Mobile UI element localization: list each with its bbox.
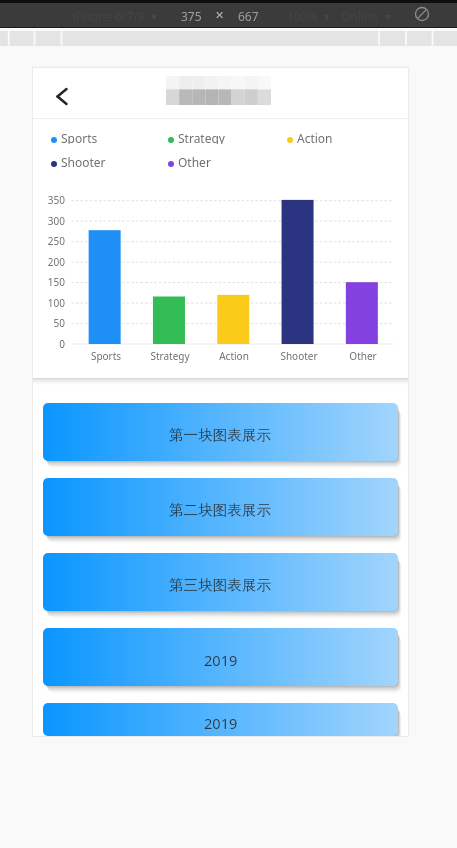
staticText: Action bbox=[202, 349, 266, 363]
staticText: 0 bbox=[33, 337, 65, 351]
button[interactable]: 第一块图表展示 bbox=[43, 403, 398, 461]
button[interactable]: Disable network throttling bbox=[410, 2, 434, 26]
staticText: Strategy bbox=[178, 130, 225, 144]
staticText: 200 bbox=[33, 255, 65, 269]
staticText: 350 bbox=[33, 193, 65, 207]
button[interactable]: 2019 bbox=[43, 703, 398, 736]
staticText: 第一块图表展示 bbox=[169, 426, 272, 444]
staticText: Sports bbox=[74, 349, 138, 363]
staticText: Shooter bbox=[267, 349, 331, 363]
button[interactable]: 第三块图表展示 bbox=[43, 553, 398, 611]
button[interactable]: Sports bbox=[51, 133, 98, 147]
staticText: Action bbox=[297, 130, 333, 144]
button[interactable]: Other bbox=[168, 157, 211, 171]
button[interactable]: Strategy bbox=[168, 133, 225, 147]
staticText: 375 bbox=[181, 8, 202, 24]
staticText: 2019 bbox=[204, 650, 238, 670]
staticText: Shooter bbox=[61, 154, 106, 168]
staticText: 50 bbox=[33, 316, 65, 330]
button[interactable]: 第二块图表展示 bbox=[43, 478, 398, 536]
staticText: 100 bbox=[33, 296, 65, 310]
staticText: 150 bbox=[33, 275, 65, 289]
staticText: ✕ bbox=[215, 9, 225, 22]
staticText: Strategy bbox=[138, 349, 202, 363]
button[interactable]: 2019 bbox=[43, 628, 398, 686]
staticText: 第二块图表展示 bbox=[169, 501, 272, 519]
staticText: 250 bbox=[33, 234, 65, 248]
button[interactable]: Back bbox=[40, 73, 84, 117]
staticText: 667 bbox=[238, 8, 259, 24]
staticText: 300 bbox=[33, 214, 65, 228]
staticText: Other bbox=[178, 154, 211, 168]
button[interactable]: Action bbox=[287, 133, 333, 147]
button[interactable]: Shooter bbox=[51, 157, 106, 171]
staticText: Sports bbox=[61, 130, 98, 144]
staticText: 第三块图表展示 bbox=[169, 576, 272, 594]
staticText: Other bbox=[331, 349, 395, 363]
staticText: 2019 bbox=[204, 713, 238, 733]
